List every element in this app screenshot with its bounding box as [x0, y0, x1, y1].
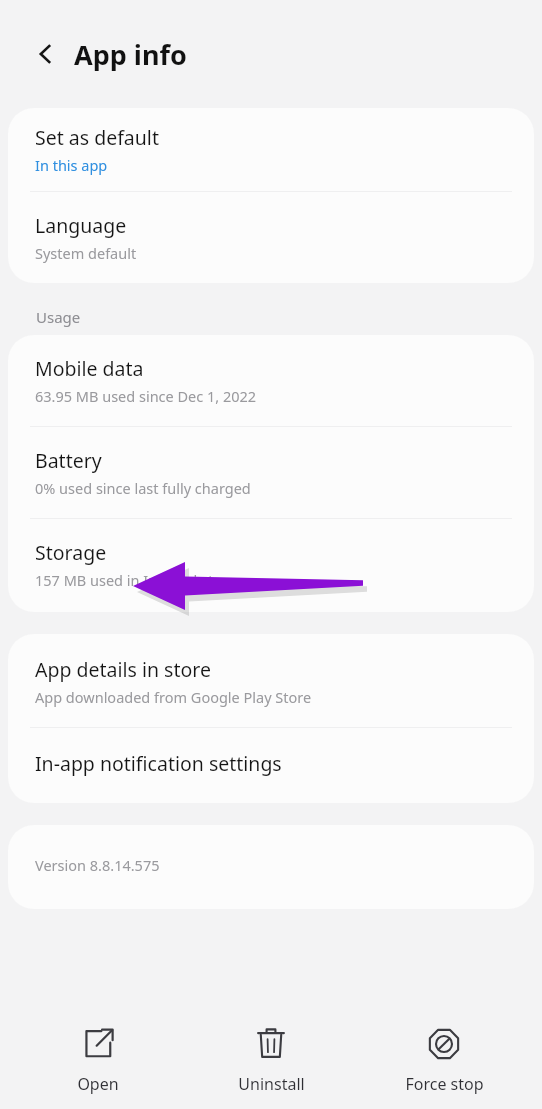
button[interactable]: Uninstall: [196, 1005, 346, 1095]
staticText: Force stop: [405, 1073, 484, 1095]
button[interactable]: Mobile data: [8, 335, 534, 426]
button[interactable]: Set as default: [8, 108, 534, 191]
staticText: In-app notification settings: [35, 750, 282, 777]
staticText: App details in store: [35, 656, 211, 683]
staticText: System default: [35, 243, 137, 263]
button[interactable]: Back: [22, 30, 70, 78]
staticText: Open: [77, 1073, 119, 1095]
staticText: Storage: [35, 539, 107, 566]
other: Uninstall: [254, 1027, 288, 1061]
button[interactable]: App details in store: [8, 634, 534, 727]
button[interactable]: In-app notification settings: [8, 728, 534, 803]
staticText: Uninstall: [238, 1073, 305, 1095]
staticText: 157 MB used in Internal storage: [35, 570, 254, 590]
staticText: Language: [35, 212, 127, 239]
staticText: Mobile data: [35, 355, 144, 382]
staticText: In this app: [35, 155, 108, 175]
staticText: 0% used since last fully charged: [35, 478, 251, 498]
other: Force stop: [427, 1027, 461, 1061]
staticText: Set as default: [35, 124, 159, 151]
button[interactable]: Open: [23, 1005, 173, 1095]
staticText: App downloaded from Google Play Store: [35, 687, 312, 707]
button[interactable]: Language: [8, 192, 534, 283]
button[interactable]: Storage: [8, 519, 534, 612]
staticText: 63.95 MB used since Dec 1, 2022: [35, 386, 257, 406]
other: Open: [81, 1027, 115, 1061]
staticText: App info: [74, 36, 187, 73]
staticText: Version 8.8.14.575: [35, 855, 160, 875]
button[interactable]: Force stop: [369, 1005, 519, 1095]
button[interactable]: Battery: [8, 427, 534, 518]
staticText: Battery: [35, 447, 102, 474]
staticText: Usage: [36, 307, 81, 327]
